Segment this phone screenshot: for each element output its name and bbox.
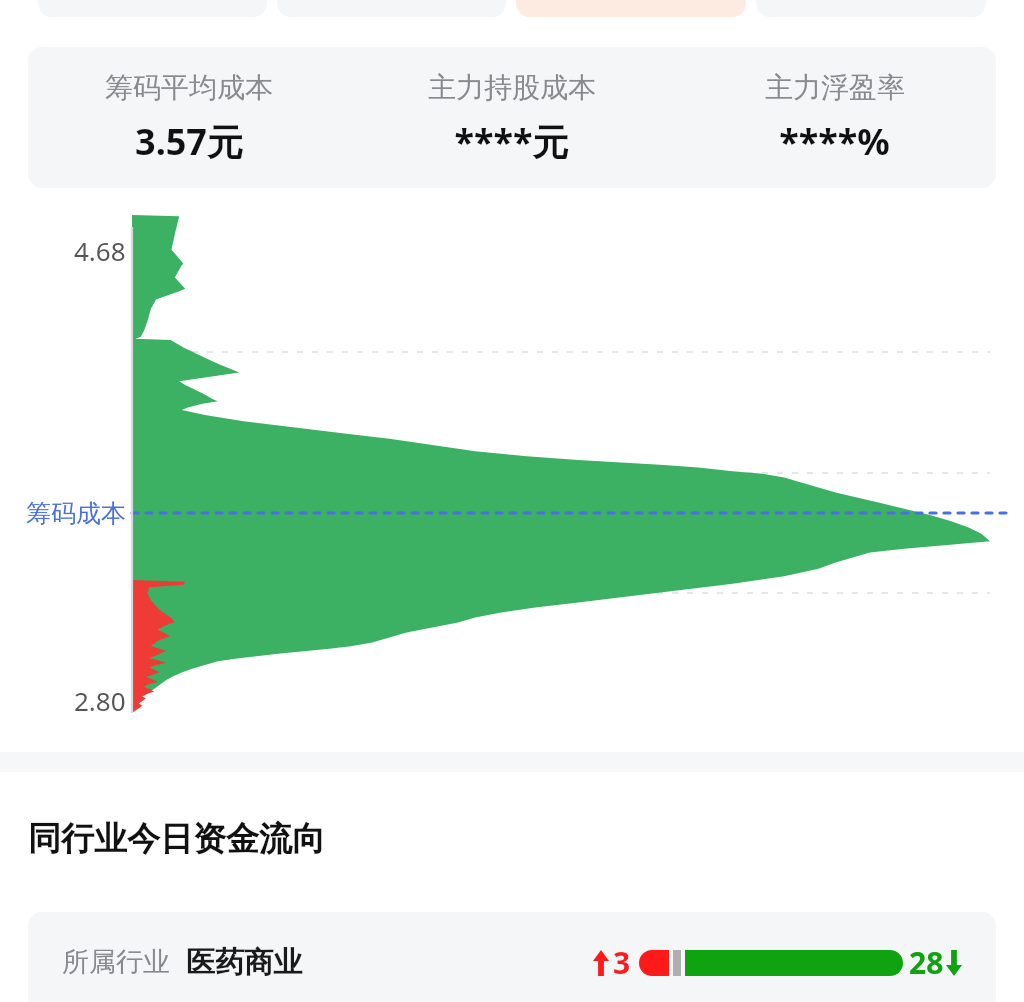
button[interactable]: 所属行业 (28, 912, 996, 1002)
button[interactable] (516, 0, 746, 17)
button[interactable]: 筹码平均成本 (28, 47, 996, 188)
staticText: 同行业今日资金流向 (28, 818, 325, 860)
staticText: 主力持股成本 (428, 70, 596, 105)
staticText: 筹码平均成本 (105, 70, 273, 105)
button[interactable]: 资金流向 3 涨 28 跌 (593, 942, 962, 983)
staticText: 主力浮盈率 (765, 70, 905, 105)
staticText: 医药商业 (186, 944, 302, 981)
staticText: 所属行业 (62, 945, 170, 979)
staticText: 2.80 (74, 683, 126, 718)
staticText: ****元 (454, 117, 569, 166)
staticText: 28 (909, 942, 944, 983)
staticText: 筹码成本 (26, 498, 126, 529)
staticText: 4.68 (74, 233, 126, 268)
staticText: 3 (613, 942, 631, 983)
staticText: ****% (779, 117, 890, 166)
staticText: 3.57元 (135, 117, 243, 166)
